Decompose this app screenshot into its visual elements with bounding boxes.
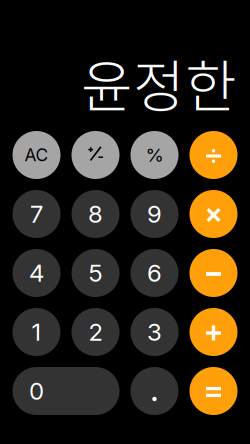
staticText: 2 xyxy=(88,317,102,346)
button[interactable]: 3 xyxy=(130,308,178,356)
button[interactable]: 6 xyxy=(130,249,178,297)
staticText: 윤정한 xyxy=(81,42,237,123)
button[interactable]: Divide xyxy=(189,131,237,179)
staticText: 7 xyxy=(30,199,43,228)
staticText: 3 xyxy=(147,317,162,346)
button[interactable]: 8 xyxy=(71,190,119,238)
button[interactable]: 9 xyxy=(130,190,178,238)
button[interactable]: Plus minus xyxy=(71,131,119,179)
button[interactable]: 0 xyxy=(12,367,119,415)
button[interactable]: 7 xyxy=(12,190,60,238)
staticText: 8 xyxy=(88,199,103,228)
staticText: 4 xyxy=(29,258,44,287)
staticText: 9 xyxy=(147,199,162,228)
button[interactable]: Multiply xyxy=(189,190,237,238)
staticText: 0 xyxy=(29,376,44,405)
button[interactable]: AC xyxy=(12,131,60,179)
staticText: 5 xyxy=(88,258,102,287)
button[interactable]: % xyxy=(130,131,178,179)
button[interactable]: 5 xyxy=(71,249,119,297)
button[interactable]: Subtract xyxy=(189,249,237,297)
button[interactable]: Decimal point xyxy=(130,367,178,415)
button[interactable]: 1 xyxy=(12,308,60,356)
button[interactable]: 2 xyxy=(71,308,119,356)
staticText: 1 xyxy=(31,317,41,346)
staticText: % xyxy=(145,144,163,166)
button[interactable]: 4 xyxy=(12,249,60,297)
button[interactable]: Equals xyxy=(189,367,237,415)
staticText: 6 xyxy=(147,258,162,287)
button[interactable]: Add xyxy=(189,308,237,356)
staticText: AC xyxy=(24,144,48,165)
